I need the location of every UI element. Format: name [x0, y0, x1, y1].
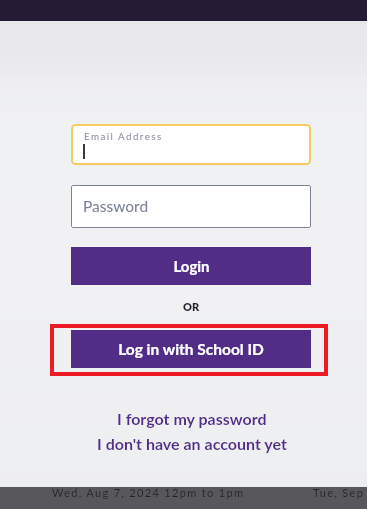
button[interactable]: Login — [71, 247, 311, 285]
staticText: Password — [83, 197, 149, 216]
button[interactable]: Log in with School ID — [71, 330, 311, 368]
staticText: Wed, Aug 7, 2024 12pm to 1pm — [52, 486, 245, 499]
staticText: Login — [173, 257, 210, 275]
button[interactable]: Email Address — [71, 124, 311, 165]
staticText: Log in with School ID — [118, 340, 264, 359]
staticText: OR — [183, 300, 200, 313]
staticText: Tue, Sep 3, 2024 10am to 11am — [313, 486, 367, 499]
button[interactable]: I don't have an account yet — [97, 431, 287, 450]
button[interactable]: I forgot my password — [117, 406, 267, 425]
button[interactable]: Password — [71, 185, 311, 228]
staticText: Email Address — [84, 130, 163, 142]
button[interactable]: Upcoming events — [0, 487, 367, 509]
staticText: I don't have an account yet — [97, 434, 287, 453]
staticText: I forgot my password — [117, 409, 267, 428]
